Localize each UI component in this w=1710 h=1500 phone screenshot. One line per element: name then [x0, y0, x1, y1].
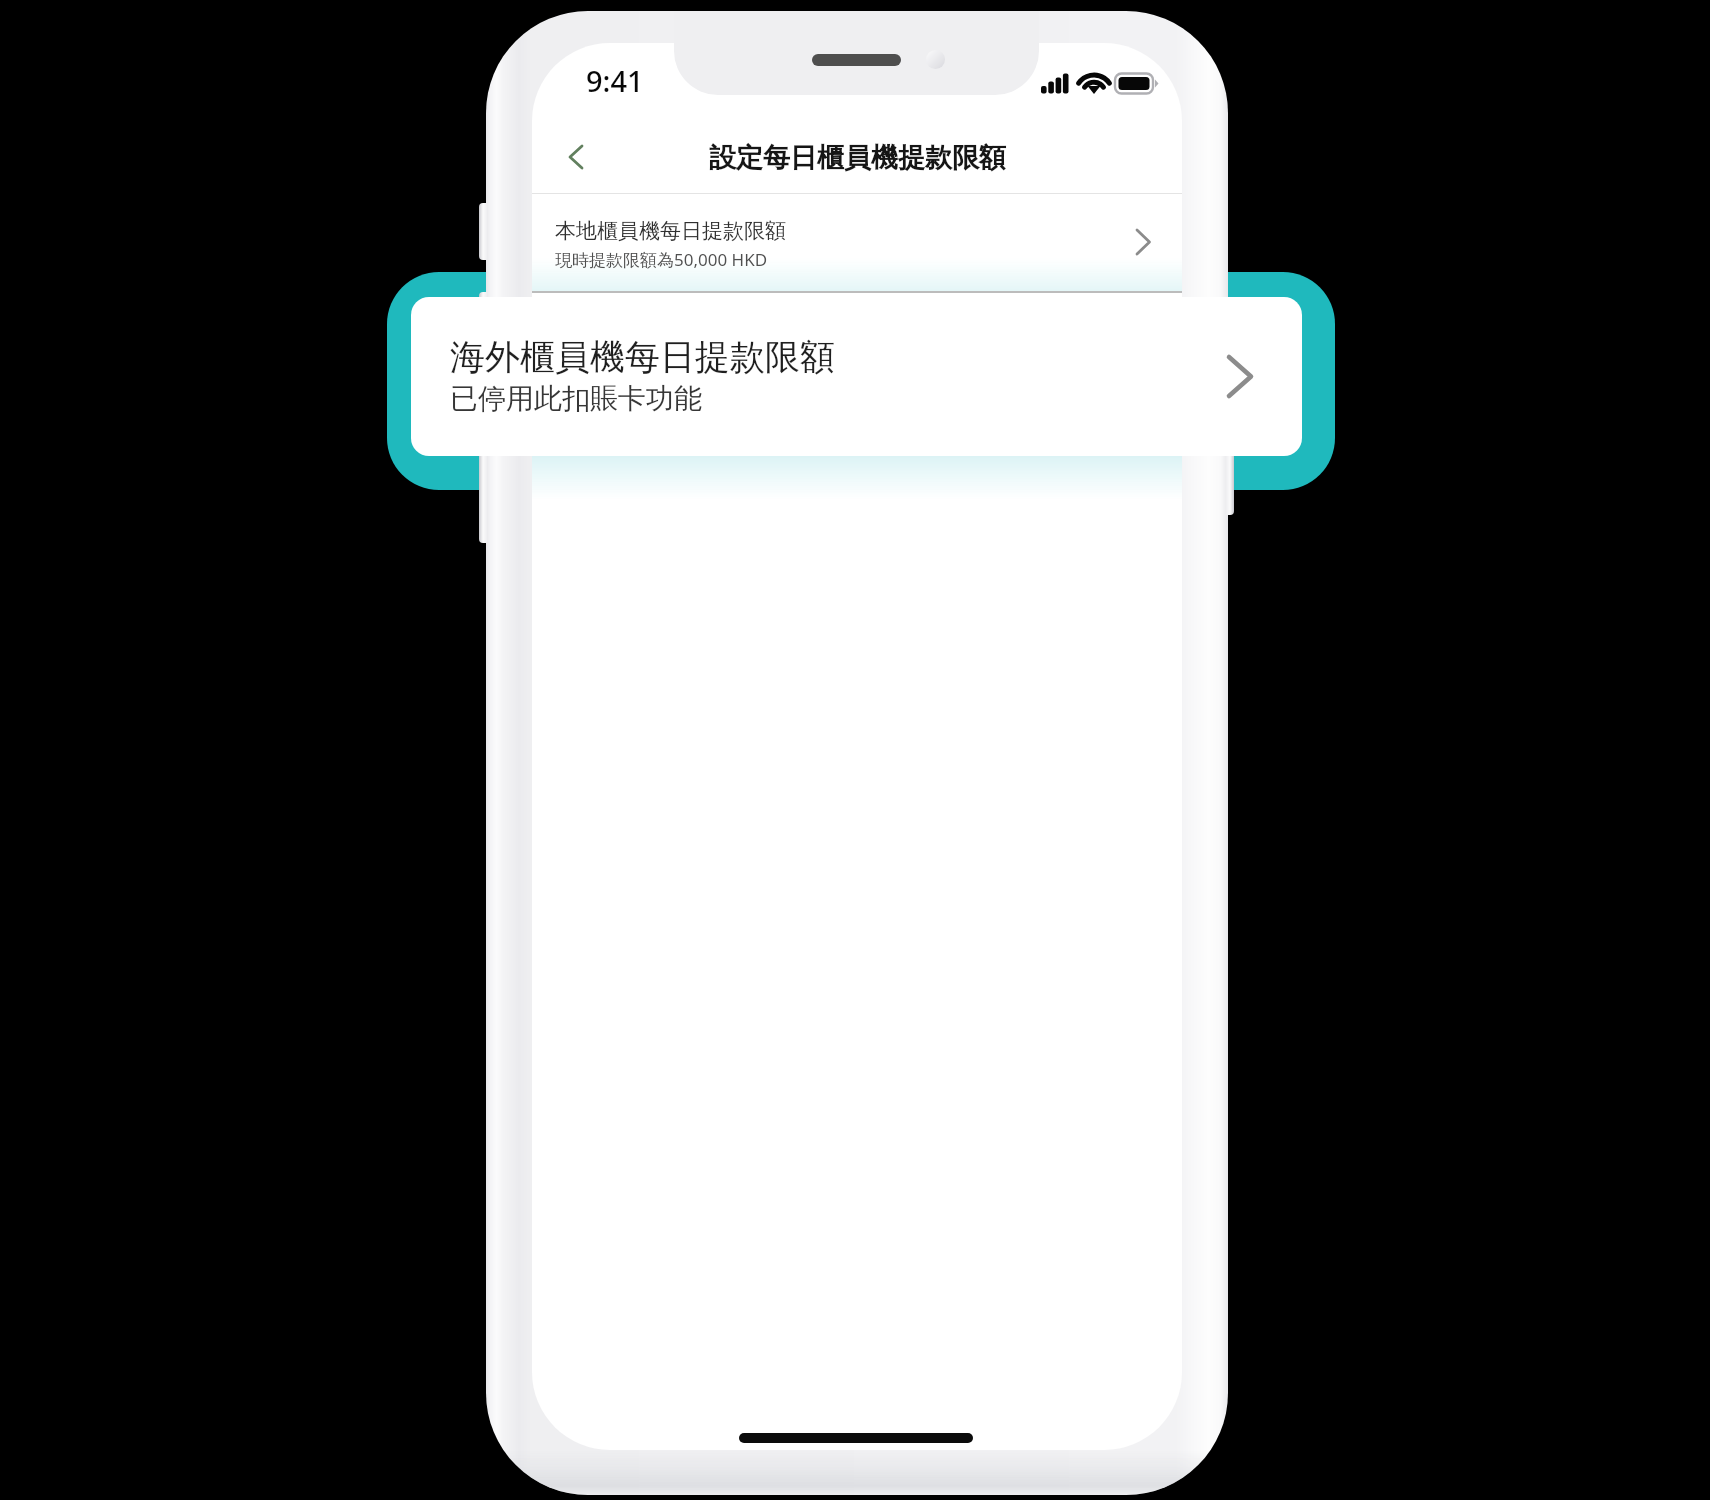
- button[interactable]: 本地櫃員機每日提款限額: [532, 194, 1182, 291]
- button[interactable]: 海外櫃員機每日提款限額: [411, 297, 1302, 456]
- staticText: 現時提款限額為50,000 HKD: [555, 248, 768, 271]
- staticText: 已停用此扣賬卡功能: [450, 381, 702, 416]
- staticText: 本地櫃員機每日提款限額: [555, 218, 786, 244]
- staticText: 設定每日櫃員機提款限額: [709, 141, 1006, 175]
- button[interactable]: Back: [542, 129, 610, 197]
- staticText: 海外櫃員機每日提款限額: [450, 335, 835, 379]
- staticText: 9:41: [586, 61, 644, 100]
